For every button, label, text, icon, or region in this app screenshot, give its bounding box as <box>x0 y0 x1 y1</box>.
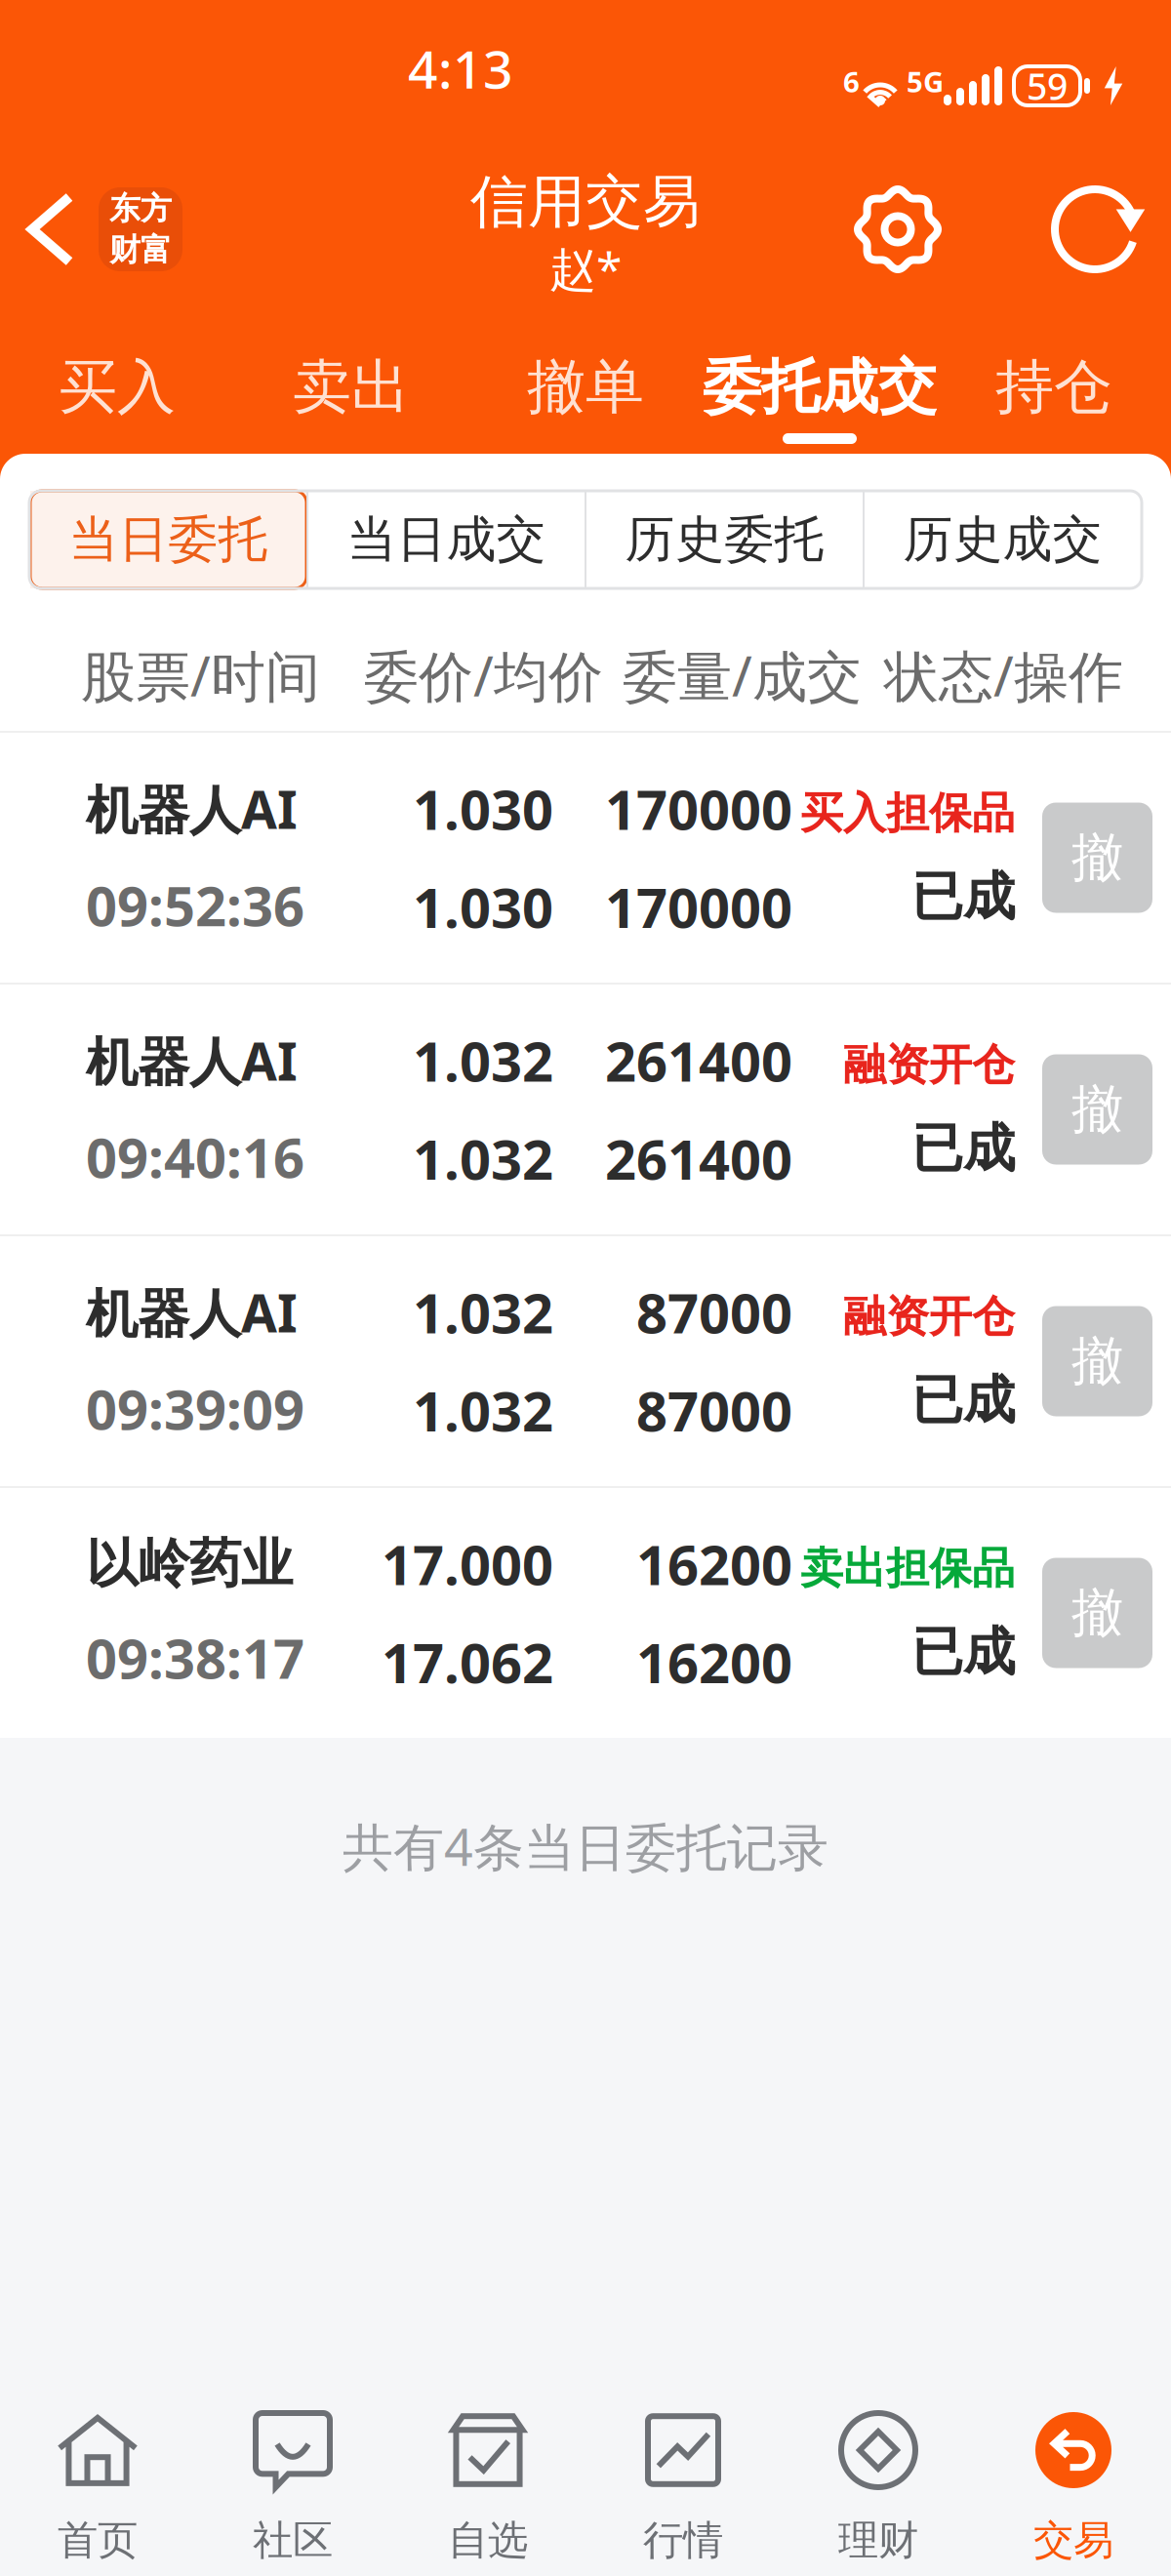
staticText: 卖出 <box>293 351 410 423</box>
staticText: 已成 <box>911 1368 1015 1432</box>
staticText: 持仓 <box>995 351 1112 423</box>
button[interactable]: 自选 <box>390 2308 585 2576</box>
staticText: 59 <box>1027 62 1068 110</box>
staticText: 1.032 <box>413 1374 553 1446</box>
button[interactable]: 撤 <box>1042 1558 1152 1668</box>
staticText: 东方 <box>109 189 172 228</box>
staticText: 历史委托 <box>625 509 824 570</box>
staticText: 信用交易 <box>470 167 701 237</box>
staticText: 自选 <box>448 2516 528 2565</box>
staticText: 历史成交 <box>903 509 1102 570</box>
staticText: 170000 <box>605 870 792 943</box>
button[interactable]: 委托成交 <box>703 322 937 454</box>
staticText: 机器人AI <box>86 1026 298 1095</box>
staticText: 09:52:36 <box>86 869 304 941</box>
staticText: 卖出担保品 <box>800 1542 1015 1595</box>
button[interactable]: 以岭药业 <box>0 1486 1171 1738</box>
staticText: 09:39:09 <box>86 1372 304 1445</box>
staticText: 股票/时间 <box>81 639 320 712</box>
button[interactable]: 社区 <box>195 2308 390 2576</box>
staticText: 以岭药业 <box>86 1532 293 1596</box>
staticText: 撤 <box>1071 1329 1123 1393</box>
button[interactable]: 设置 <box>837 169 958 290</box>
staticText: 09:38:17 <box>86 1621 304 1694</box>
staticText: 首页 <box>58 2516 138 2565</box>
staticText: 1.032 <box>413 1024 553 1097</box>
staticText: 1.032 <box>413 1276 553 1348</box>
staticText: 撤 <box>1071 1581 1123 1645</box>
staticText: 买入担保品 <box>800 787 1015 839</box>
button[interactable]: 撤 <box>1042 1054 1152 1165</box>
staticText: 16200 <box>636 1528 792 1600</box>
staticText: 170000 <box>605 772 792 845</box>
staticText: 6 <box>843 62 860 101</box>
staticText: 撤 <box>1071 826 1123 890</box>
staticText: 理财 <box>838 2516 918 2565</box>
button[interactable]: 历史成交 <box>865 491 1141 588</box>
button[interactable]: 撤 <box>1042 1306 1152 1416</box>
staticText: 状态/操作 <box>884 639 1123 712</box>
button[interactable]: 行情 <box>585 2308 781 2576</box>
button[interactable]: 机器人AI <box>0 983 1171 1234</box>
staticText: 委托成交 <box>703 351 937 423</box>
button[interactable]: 机器人AI <box>0 1234 1171 1486</box>
staticText: 已成 <box>911 1620 1015 1684</box>
staticText: 261400 <box>605 1122 792 1195</box>
staticText: 社区 <box>253 2516 333 2565</box>
staticText: 87000 <box>636 1374 792 1446</box>
button[interactable]: 持仓 <box>937 322 1171 454</box>
button[interactable]: 交易 <box>976 2308 1171 2576</box>
staticText: 已成 <box>911 1117 1015 1180</box>
button[interactable]: 首页 <box>0 2308 195 2576</box>
button[interactable]: 机器人AI <box>0 733 1171 983</box>
button[interactable]: 撤 <box>1042 803 1152 913</box>
staticText: 撤 <box>1071 1077 1123 1141</box>
staticText: 机器人AI <box>86 1278 298 1347</box>
staticText: 87000 <box>636 1276 792 1348</box>
staticText: 261400 <box>605 1024 792 1097</box>
staticText: 4:13 <box>408 34 513 103</box>
button[interactable]: 当日委托 <box>30 491 306 588</box>
staticText: 1.032 <box>413 1122 553 1195</box>
staticText: 机器人AI <box>86 774 298 843</box>
staticText: 交易 <box>1033 2516 1113 2565</box>
staticText: 撤单 <box>527 351 644 423</box>
staticText: 17.062 <box>382 1626 553 1698</box>
button[interactable]: 返回 <box>0 137 182 322</box>
button[interactable]: 当日成交 <box>308 491 585 588</box>
staticText: 赵* <box>549 237 622 299</box>
staticText: 委量/成交 <box>623 639 862 712</box>
staticText: 1.030 <box>413 772 553 845</box>
staticText: 共有4条当日委托记录 <box>343 1812 828 1880</box>
button[interactable]: 卖出 <box>234 322 468 454</box>
staticText: 财富 <box>109 231 172 269</box>
staticText: 1.030 <box>413 870 553 943</box>
staticText: 16200 <box>636 1626 792 1698</box>
staticText: 17.000 <box>382 1528 553 1600</box>
staticText: 当日成交 <box>347 509 546 570</box>
button[interactable]: 刷新 <box>1034 169 1155 290</box>
button[interactable]: 买入 <box>0 322 234 454</box>
staticText: 09:40:16 <box>86 1120 304 1193</box>
staticText: 买入 <box>59 351 176 423</box>
button[interactable]: 撤单 <box>468 322 703 454</box>
button[interactable]: 理财 <box>781 2308 976 2576</box>
staticText: 融资开仓 <box>843 1290 1015 1343</box>
staticText: 行情 <box>643 2516 723 2565</box>
staticText: 委价/均价 <box>364 639 603 712</box>
staticText: 当日委托 <box>69 509 268 570</box>
staticText: 5G <box>907 62 944 101</box>
button[interactable]: 历史委托 <box>586 491 863 588</box>
staticText: 融资开仓 <box>843 1038 1015 1091</box>
staticText: 已成 <box>911 865 1015 929</box>
